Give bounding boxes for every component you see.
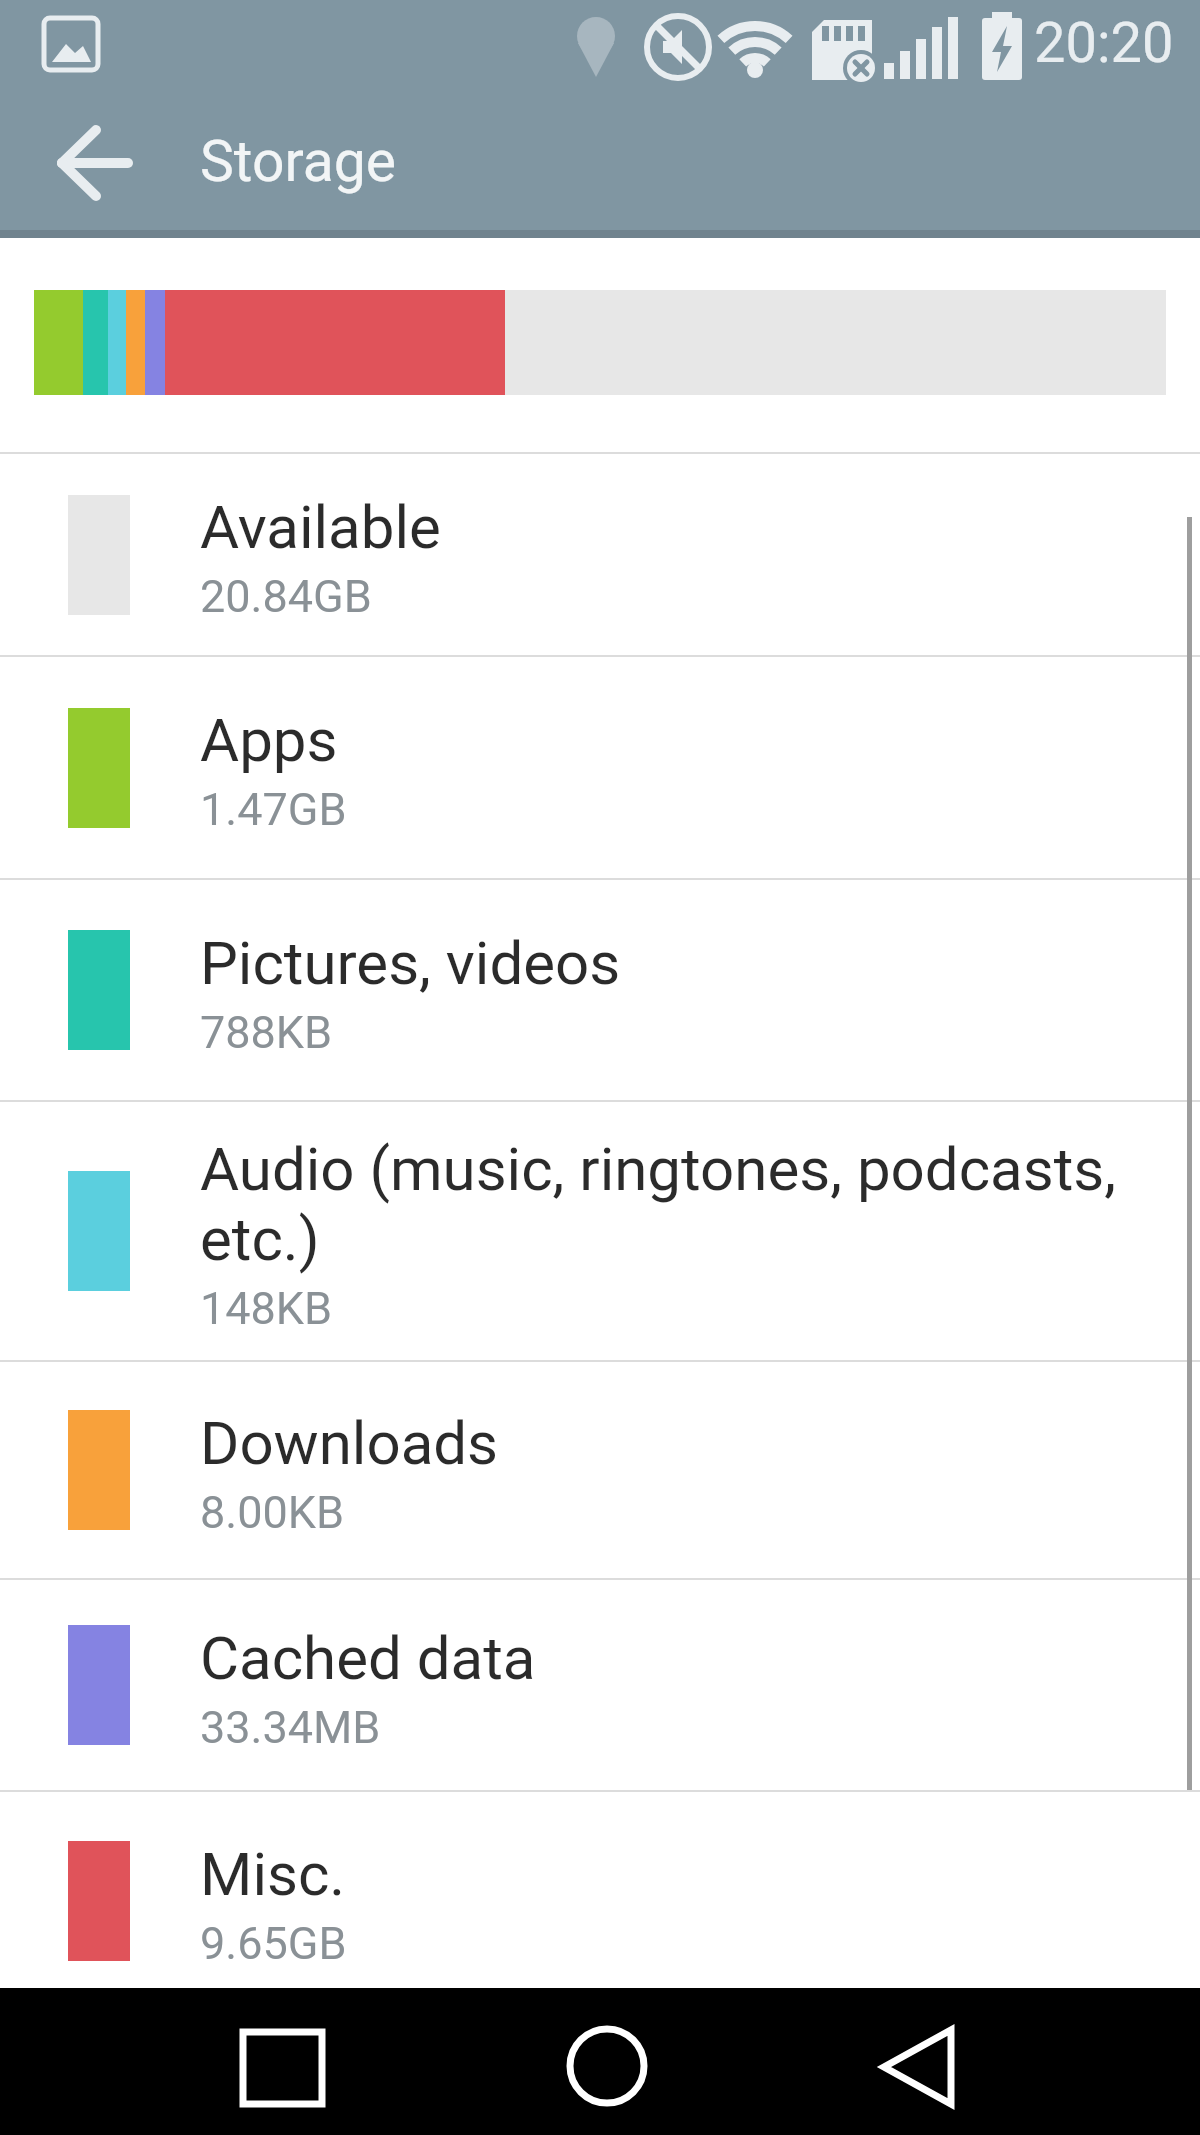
staticText: 20.84GB: [200, 570, 372, 623]
button[interactable]: Pictures, videos: [0, 878, 1200, 1100]
button[interactable]: [0, 1988, 400, 2135]
staticText: 8.00KB: [200, 1486, 345, 1539]
button[interactable]: [800, 1988, 1200, 2135]
staticText: 1.47GB: [200, 783, 347, 836]
button[interactable]: [400, 1988, 800, 2135]
button[interactable]: [0, 0, 150, 238]
staticText: Storage: [200, 128, 396, 195]
button[interactable]: Apps: [0, 655, 1200, 878]
staticText: Cached data: [200, 1623, 536, 1693]
staticText: Available: [200, 492, 441, 562]
staticText: Pictures, videos: [200, 928, 621, 998]
button[interactable]: Downloads: [0, 1360, 1200, 1578]
staticText: Apps: [200, 705, 338, 775]
staticText: 20:20: [1034, 10, 1174, 76]
staticText: 9.65GB: [200, 1917, 347, 1970]
button[interactable]: Cached data: [0, 1578, 1200, 1790]
button[interactable]: Available: [0, 452, 1200, 655]
staticText: 148KB: [200, 1282, 333, 1335]
button[interactable]: Audio (music, ringtones, podcasts, etc.): [0, 1100, 1200, 1360]
staticText: 33.34MB: [200, 1701, 381, 1754]
button[interactable]: Misc.: [0, 1790, 1200, 2010]
staticText: Downloads: [200, 1408, 499, 1478]
staticText: 788KB: [200, 1006, 333, 1059]
staticText: Misc.: [200, 1839, 346, 1909]
staticText: Audio (music, ringtones, podcasts, etc.): [200, 1134, 1142, 1274]
